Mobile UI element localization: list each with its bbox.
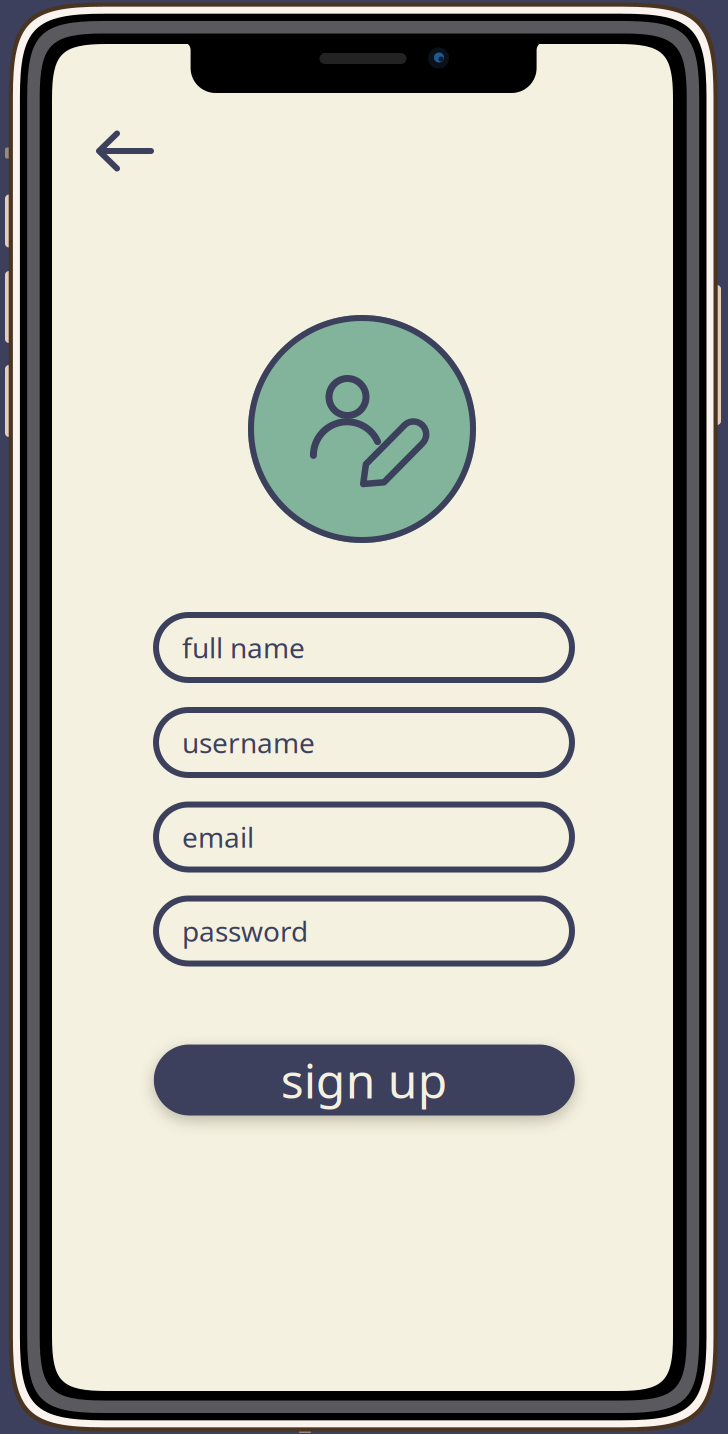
staticText: email bbox=[182, 818, 254, 856]
button[interactable]: full name bbox=[153, 612, 575, 683]
staticText: full name bbox=[182, 629, 305, 666]
button[interactable]: email bbox=[153, 801, 575, 872]
staticText: sign up bbox=[281, 1048, 448, 1112]
button[interactable]: Back bbox=[89, 115, 161, 187]
button[interactable]: password bbox=[153, 895, 575, 966]
staticText: username bbox=[182, 724, 315, 761]
button[interactable]: sign up bbox=[154, 1044, 575, 1115]
staticText: password bbox=[182, 912, 308, 950]
button[interactable]: username bbox=[153, 707, 575, 778]
